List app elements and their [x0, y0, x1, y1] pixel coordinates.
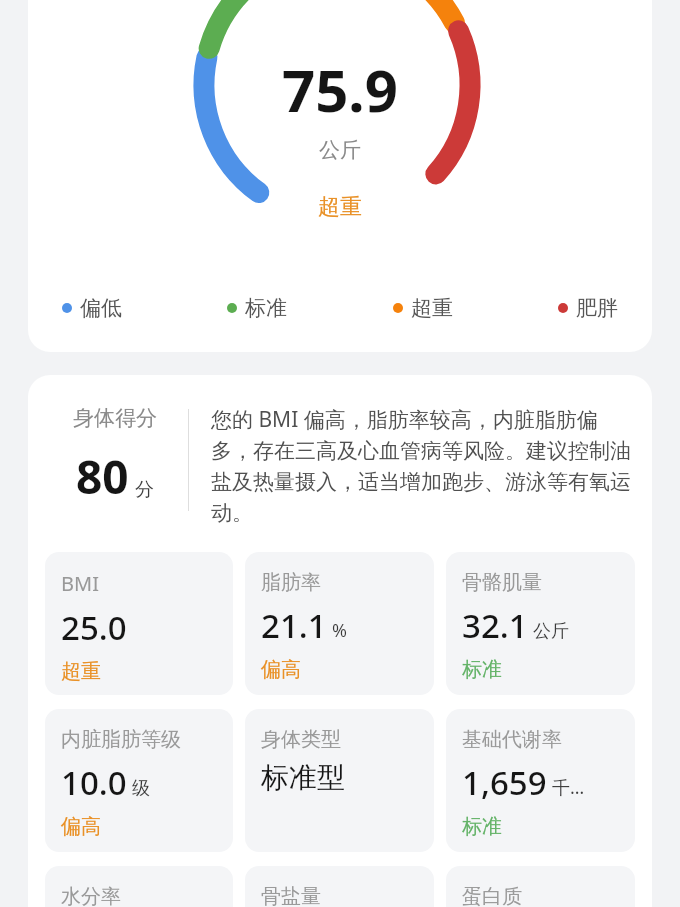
- button[interactable]: 身体类型: [245, 709, 434, 852]
- staticText: 80: [76, 445, 129, 508]
- button[interactable]: 肥胖: [558, 295, 618, 321]
- staticText: 千…: [552, 775, 585, 800]
- staticText: 21.1: [261, 603, 327, 648]
- staticText: BMI: [61, 570, 99, 597]
- staticText: 级: [132, 777, 150, 800]
- button[interactable]: 水分率: [45, 866, 233, 907]
- button[interactable]: 内脏脂肪等级: [45, 709, 233, 852]
- staticText: 1,659: [462, 760, 547, 805]
- staticText: 您的 BMI 偏高，脂肪率较高，内脏脂肪偏多，存在三高及心血管病等风险。建议控制…: [211, 405, 632, 526]
- staticText: 公斤: [319, 137, 361, 163]
- staticText: 分: [135, 478, 154, 502]
- staticText: 超重: [318, 193, 362, 221]
- staticText: 标准: [462, 814, 502, 839]
- staticText: 身体得分: [73, 405, 157, 431]
- staticText: 内脏脂肪等级: [61, 727, 181, 752]
- staticText: 25.0: [61, 605, 127, 650]
- staticText: 超重: [411, 295, 453, 321]
- staticText: 75.9: [282, 50, 398, 129]
- staticText: 偏低: [80, 295, 122, 321]
- button[interactable]: 骨盐量: [245, 866, 434, 907]
- staticText: 32.1: [462, 603, 528, 648]
- staticText: 脂肪率: [261, 570, 321, 595]
- staticText: 水分率: [61, 884, 121, 907]
- staticText: 标准型: [261, 760, 345, 795]
- button[interactable]: 75.9: [28, 0, 652, 352]
- staticText: 基础代谢率: [462, 727, 562, 752]
- staticText: %: [332, 618, 347, 643]
- button[interactable]: 超重: [393, 295, 453, 321]
- staticText: 肥胖: [576, 295, 618, 321]
- staticText: 蛋白质: [462, 884, 522, 907]
- button[interactable]: 标准: [227, 295, 287, 321]
- button[interactable]: 偏低: [62, 295, 122, 321]
- button[interactable]: 骨骼肌量: [446, 552, 635, 695]
- button[interactable]: 基础代谢率: [446, 709, 635, 852]
- staticText: 10.0: [61, 760, 127, 805]
- staticText: 超重: [61, 659, 101, 684]
- button[interactable]: 脂肪率: [245, 552, 434, 695]
- button[interactable]: 身体得分: [28, 375, 652, 907]
- button[interactable]: BMI: [45, 552, 233, 695]
- staticText: 骨骼肌量: [462, 570, 542, 595]
- staticText: 标准: [245, 295, 287, 321]
- staticText: 身体类型: [261, 727, 341, 752]
- staticText: 偏高: [261, 657, 301, 682]
- staticText: 公斤: [533, 620, 569, 643]
- staticText: 骨盐量: [261, 884, 321, 907]
- staticText: 标准: [462, 657, 502, 682]
- staticText: 偏高: [61, 814, 101, 839]
- button[interactable]: 蛋白质: [446, 866, 635, 907]
